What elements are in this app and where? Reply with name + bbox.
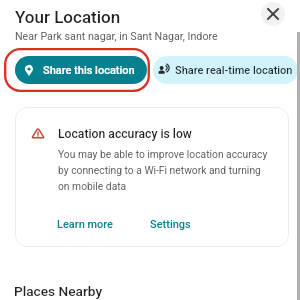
button[interactable]: Close (261, 2, 285, 26)
staticText: Share real-time location (175, 64, 293, 77)
button[interactable]: Share this location (15, 56, 147, 84)
staticText: Near Park sant nagar, in Sant Nagar, Ind… (15, 30, 218, 43)
button[interactable]: Share real-time location (153, 56, 298, 84)
staticText: Share this location (43, 64, 135, 77)
staticText: Location accuracy is low (58, 127, 192, 141)
staticText: Your Location (15, 7, 121, 27)
staticText: You may be able to improve location accu… (58, 148, 272, 192)
button[interactable]: Learn more (49, 213, 122, 236)
staticText: Learn more (57, 218, 114, 231)
staticText: Places Nearby (14, 283, 103, 299)
staticText: Settings (150, 218, 191, 231)
button[interactable]: Settings (142, 213, 199, 236)
